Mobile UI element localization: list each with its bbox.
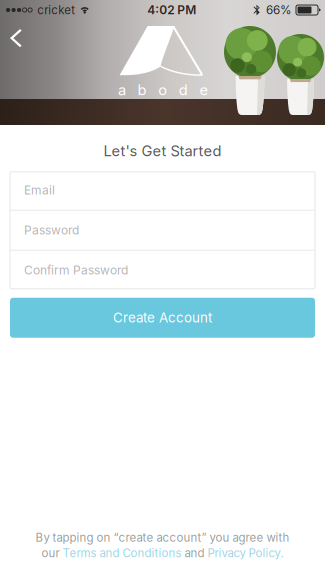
staticText: By tapping on “create account” you agree… bbox=[35, 531, 289, 545]
staticText: our bbox=[41, 546, 62, 560]
button[interactable]: Email bbox=[10, 171, 315, 210]
staticText: 66% bbox=[266, 3, 292, 17]
button[interactable]: Terms and Conditions bbox=[62, 546, 181, 560]
staticText: cricket bbox=[37, 3, 75, 17]
staticText: b bbox=[138, 81, 147, 99]
staticText: Password bbox=[24, 223, 79, 237]
staticText: Let's Get Started bbox=[103, 142, 221, 160]
button[interactable]: Back bbox=[0, 20, 36, 54]
button[interactable]: Confirm Password bbox=[10, 251, 315, 290]
staticText: o bbox=[158, 81, 167, 99]
staticText: d bbox=[179, 81, 188, 99]
button[interactable]: Password bbox=[10, 211, 315, 250]
button[interactable]: Privacy Policy. bbox=[207, 546, 283, 560]
staticText: 4:02 PM bbox=[147, 3, 196, 17]
staticText: Create Account bbox=[113, 310, 212, 326]
staticText: and bbox=[181, 546, 207, 560]
staticText: Email bbox=[24, 183, 55, 197]
button[interactable]: Create Account bbox=[10, 298, 315, 338]
staticText: a bbox=[118, 81, 126, 99]
staticText: e bbox=[199, 81, 208, 99]
staticText: Privacy Policy. bbox=[207, 546, 283, 560]
staticText: Confirm Password bbox=[24, 263, 128, 277]
staticText: Terms and Conditions bbox=[62, 546, 181, 560]
